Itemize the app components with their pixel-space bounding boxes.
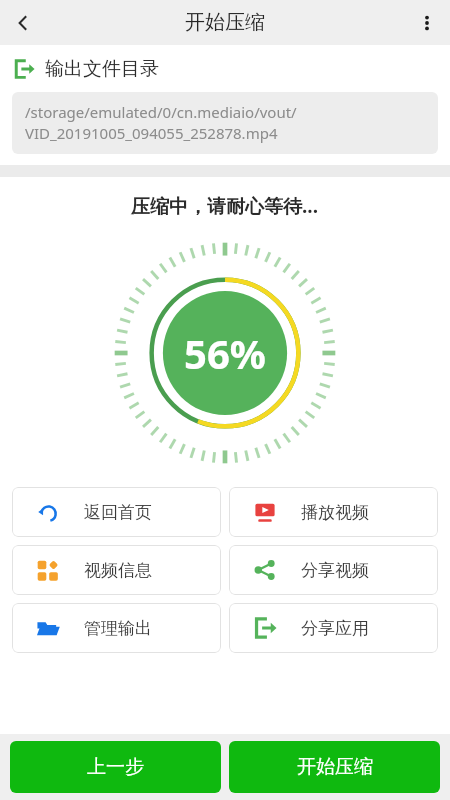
button[interactable]: 上一步 <box>10 741 221 793</box>
staticText: 压缩中，请耐心等待... <box>131 193 319 219</box>
staticText: 输出文件目录 <box>45 57 159 81</box>
button[interactable]: 管理输出 <box>12 603 221 653</box>
staticText: 上一步 <box>87 755 144 779</box>
button[interactable]: 分享应用 <box>229 603 438 653</box>
button[interactable]: More options <box>404 0 450 45</box>
staticText: 开始压缩 <box>297 755 373 779</box>
button[interactable]: 视频信息 <box>12 545 221 595</box>
button[interactable]: 播放视频 <box>229 487 438 537</box>
button[interactable]: 开始压缩 <box>229 741 440 793</box>
staticText: 播放视频 <box>301 502 369 523</box>
button[interactable]: 返回首页 <box>12 487 221 537</box>
button[interactable]: 分享视频 <box>229 545 438 595</box>
staticText: 返回首页 <box>84 502 152 523</box>
button[interactable]: /storage/emulated/0/cn.mediaio/vout/ VID… <box>12 92 438 154</box>
staticText: 开始压缩 <box>185 10 265 35</box>
staticText: 管理输出 <box>84 618 152 639</box>
staticText: 视频信息 <box>84 560 152 581</box>
button[interactable]: Back <box>0 0 46 45</box>
staticText: 分享视频 <box>301 560 369 581</box>
staticText: /storage/emulated/0/cn.mediaio/vout/ VID… <box>25 102 297 144</box>
staticText: 分享应用 <box>301 618 369 639</box>
staticText: 56% <box>184 326 266 380</box>
